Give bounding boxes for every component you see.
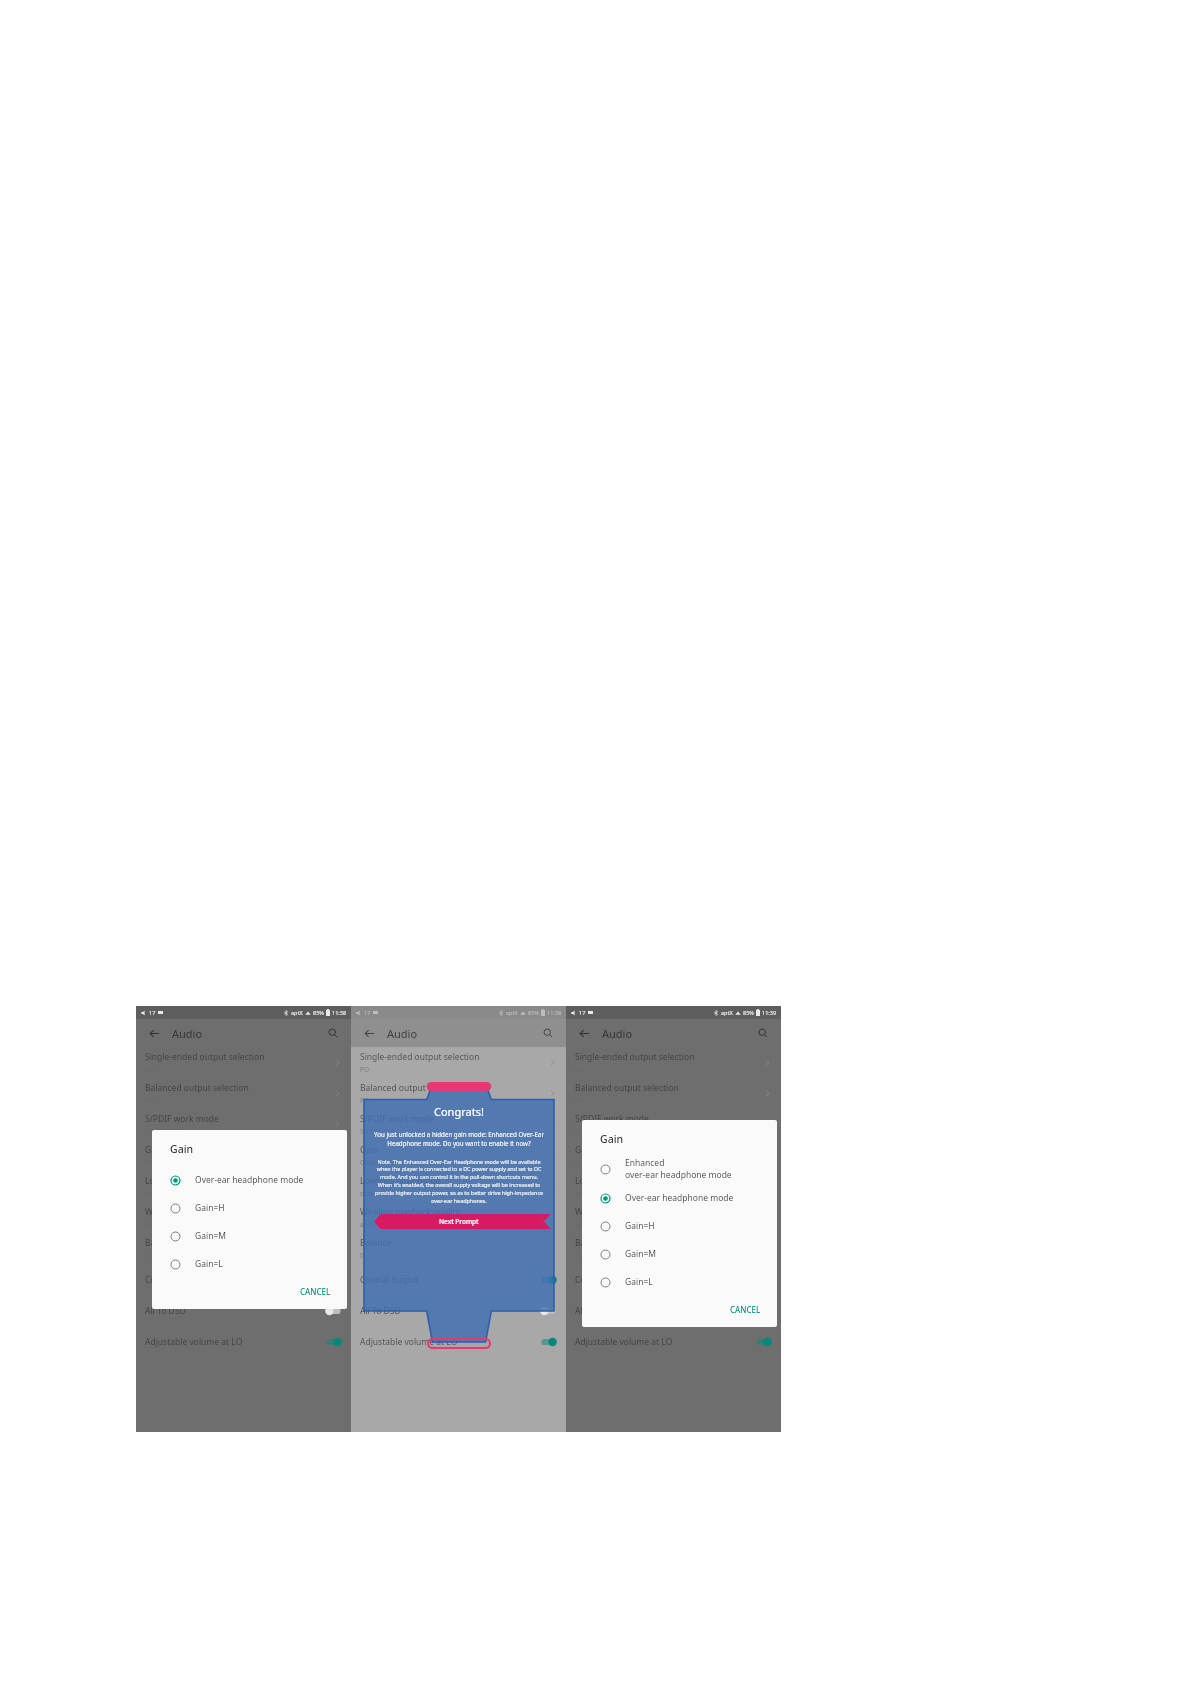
button[interactable]: Wireless playback quality — [351, 1202, 566, 1233]
button[interactable]: Over-ear headphone mode — [152, 1166, 347, 1194]
staticText: 0 — [360, 1251, 364, 1260]
button[interactable]: Next Prompt — [374, 1214, 544, 1229]
button[interactable]: Coaxial output — [566, 1264, 781, 1295]
button[interactable]: Gain=H — [152, 1194, 347, 1222]
staticText: All To DSD — [145, 1305, 186, 1317]
staticText: CANCEL — [300, 1286, 331, 1297]
staticText: aptX — [575, 1220, 589, 1229]
button[interactable]: S/PDIF work mode — [136, 1109, 351, 1140]
button[interactable]: Coaxial output — [136, 1264, 351, 1295]
button[interactable]: Gain — [136, 1140, 351, 1171]
button[interactable]: Balanced output selection — [351, 1078, 566, 1109]
button[interactable]: Lowpass filter mode — [566, 1171, 781, 1202]
staticText: Adjustable volume at LO — [145, 1336, 243, 1348]
button[interactable]: Lowpass filter mode — [351, 1171, 566, 1202]
button[interactable]: Single-ended output selection — [351, 1047, 566, 1078]
button[interactable]: Gain=L — [582, 1268, 777, 1296]
button[interactable]: All To DSD — [566, 1295, 781, 1326]
button[interactable]: Gain=H — [582, 1212, 777, 1240]
button[interactable]: Over-ear headphone mode — [582, 1184, 777, 1212]
button[interactable]: Balance — [566, 1233, 781, 1264]
staticText: 11:38 — [547, 1009, 562, 1016]
staticText: S/PDIF work mode — [575, 1113, 649, 1125]
staticText: Wireless playback quality — [145, 1206, 245, 1218]
staticText: Over-ear headphone mode — [360, 1158, 443, 1167]
button[interactable]: All To DSD — [351, 1295, 566, 1326]
staticText: S/PDIF OUT — [145, 1127, 181, 1136]
staticText: 85% — [313, 1009, 324, 1016]
staticText: 11:39 — [762, 1009, 777, 1016]
button[interactable]: Gain=L — [152, 1250, 347, 1278]
staticText: slow roll-off filter — [145, 1189, 197, 1198]
button[interactable]: Adjustable volume at LO — [351, 1326, 566, 1357]
staticText: aptX — [721, 1009, 733, 1016]
button[interactable]: Gain=M — [582, 1240, 777, 1268]
button[interactable]: Back — [145, 1024, 163, 1042]
staticText: Lowpass filter mode — [145, 1175, 226, 1187]
button[interactable]: Balanced output selection — [566, 1078, 781, 1109]
staticText: Lowpass filter mode — [575, 1175, 656, 1187]
button[interactable]: Single-ended output selection — [566, 1047, 781, 1078]
button[interactable]: Adjustable volume at LO — [136, 1326, 351, 1357]
staticText: Single-ended output selection — [575, 1051, 695, 1063]
staticText: You just unlocked a hidden gain mode: En… — [374, 1130, 544, 1148]
staticText: slow roll-off filter — [575, 1189, 627, 1198]
staticText: Gain — [360, 1144, 379, 1156]
staticText: Balanced output selection — [360, 1082, 464, 1094]
button[interactable]: S/PDIF work mode — [351, 1109, 566, 1140]
button[interactable]: Wireless playback quality — [136, 1202, 351, 1233]
button[interactable]: CANCEL — [294, 1282, 337, 1301]
button[interactable]: Search — [324, 1024, 342, 1042]
staticText: Gain=L — [625, 1276, 653, 1288]
staticText: Single-ended output selection — [360, 1051, 480, 1063]
staticText: Over-ear headphone mode — [625, 1192, 734, 1204]
button[interactable]: Single-ended output selection — [136, 1047, 351, 1078]
staticText: Audio — [387, 1026, 418, 1041]
staticText: Coaxial output — [145, 1274, 204, 1286]
button[interactable]: Search — [539, 1024, 557, 1042]
button[interactable]: Balanced output selection — [136, 1078, 351, 1109]
staticText: 11:38 — [332, 1009, 347, 1016]
staticText: Gain=L — [195, 1258, 223, 1270]
staticText: 85% — [528, 1009, 539, 1016]
button[interactable]: S/PDIF work mode — [566, 1109, 781, 1140]
staticText: Congrats! — [434, 1104, 484, 1119]
button[interactable]: CANCEL — [724, 1300, 767, 1319]
button[interactable]: Back — [360, 1024, 378, 1042]
staticText: Coaxial output — [360, 1274, 419, 1286]
staticText: Gain=M — [625, 1248, 656, 1260]
staticText: slow roll-off filter — [360, 1189, 412, 1198]
button[interactable]: Enhanced — [582, 1154, 777, 1184]
staticText: 17 — [364, 1009, 371, 1016]
button[interactable]: Back — [575, 1024, 593, 1042]
staticText: Over-ear headphone mode — [195, 1174, 304, 1186]
button[interactable]: Balance — [136, 1233, 351, 1264]
staticText: Gain — [600, 1132, 624, 1146]
button[interactable]: Search — [754, 1024, 772, 1042]
staticText: 85% — [743, 1009, 754, 1016]
button[interactable]: Gain — [351, 1140, 566, 1171]
staticText: Gain=M — [195, 1230, 226, 1242]
button[interactable]: Balance — [351, 1233, 566, 1264]
staticText: Balance — [575, 1237, 607, 1249]
button[interactable]: All To DSD — [136, 1295, 351, 1326]
button[interactable]: Gain=M — [152, 1222, 347, 1250]
staticText: Wireless playback quality — [575, 1206, 675, 1218]
button[interactable]: Wireless playback quality — [566, 1202, 781, 1233]
button[interactable]: Lowpass filter mode — [136, 1171, 351, 1202]
staticText: Gain — [575, 1144, 594, 1156]
staticText: aptX — [506, 1009, 518, 1016]
staticText: CANCEL — [730, 1304, 761, 1315]
staticText: Over-ear headphone mode — [575, 1158, 658, 1167]
button[interactable]: Adjustable volume at LO — [566, 1326, 781, 1357]
staticText: Wireless playback quality — [360, 1206, 460, 1218]
staticText: over-ear headphone mode — [625, 1169, 732, 1181]
button[interactable]: Coaxial output — [351, 1264, 566, 1295]
staticText: PO — [360, 1096, 370, 1105]
staticText: 17 — [149, 1009, 156, 1016]
button[interactable]: Gain — [566, 1140, 781, 1171]
staticText: Balance — [360, 1237, 392, 1249]
staticText: Lowpass filter mode — [360, 1175, 441, 1187]
staticText: Gain — [170, 1142, 194, 1156]
